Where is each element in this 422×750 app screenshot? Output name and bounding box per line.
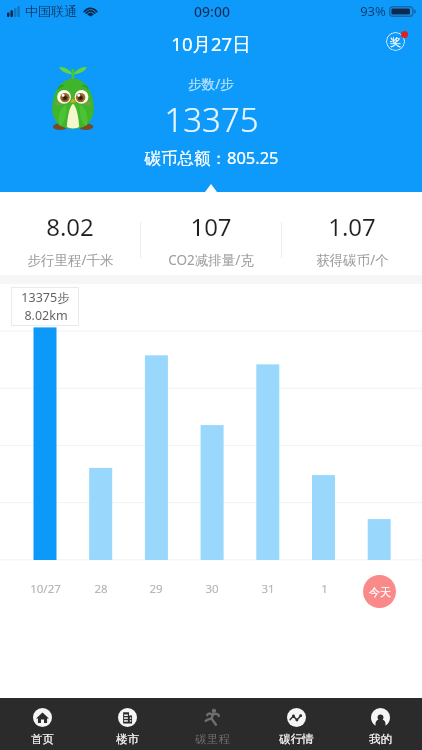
staticText: 碳币总额：805.25 (144, 146, 279, 169)
staticText: 步数/步 (188, 75, 234, 93)
button[interactable]: 1.07 (282, 204, 422, 275)
staticText: 13375步 (21, 289, 70, 306)
button[interactable]: 我的 (338, 698, 422, 750)
staticText: 碳里程 (195, 732, 230, 746)
staticText: 09:00 (194, 2, 230, 21)
staticText: CO2减排量/克 (168, 251, 254, 269)
button[interactable]: 碳里程 (170, 698, 254, 750)
staticText: 30 (205, 581, 219, 597)
button[interactable]: 碳行情 (254, 698, 338, 750)
staticText: 碳行情 (279, 732, 314, 746)
staticText: 今天 (369, 585, 391, 599)
staticText: 31 (261, 581, 275, 597)
staticText: 1.07 (328, 210, 376, 243)
button[interactable]: 首页 (0, 698, 85, 750)
button[interactable]: 今天 (363, 575, 396, 608)
button[interactable]: 8.02 (0, 204, 140, 275)
staticText: 8.02 (46, 210, 94, 243)
staticText: 1 (321, 581, 328, 597)
staticText: 奖 (390, 35, 401, 49)
staticText: 29 (149, 581, 163, 597)
staticText: 107 (190, 210, 232, 243)
staticText: 10/27 (30, 581, 61, 597)
staticText: 获得碳币/个 (316, 251, 389, 269)
staticText: 我的 (369, 732, 392, 746)
staticText: 首页 (31, 732, 54, 746)
button[interactable]: 楼市 (85, 698, 170, 750)
staticText: 楼市 (116, 732, 139, 746)
staticText: 28 (94, 581, 108, 597)
staticText: 中国联通 (25, 3, 77, 19)
staticText: 8.02km (24, 307, 68, 324)
staticText: 步行里程/千米 (27, 251, 114, 269)
staticText: 10月27日 (171, 31, 251, 56)
staticText: 93% (360, 2, 386, 20)
button[interactable]: 107 (141, 204, 281, 275)
button[interactable]: 奖励 (384, 30, 408, 54)
staticText: 13375 (164, 97, 259, 142)
